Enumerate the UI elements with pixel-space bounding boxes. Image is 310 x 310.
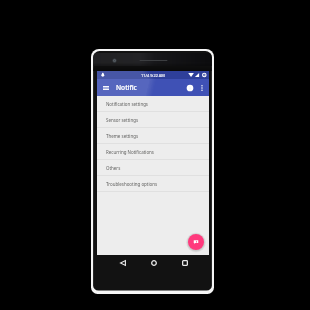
button[interactable]: New message xyxy=(188,234,204,250)
staticText: 11/4 9:22 AM xyxy=(141,73,165,78)
staticText: Sensor settings xyxy=(106,117,139,123)
staticText: Notific xyxy=(116,83,137,92)
staticText: Recurring Notifications xyxy=(106,149,154,155)
button[interactable]: Notification settings xyxy=(97,96,209,112)
staticText: Notification settings xyxy=(106,101,148,107)
button[interactable]: Troubleshooting options xyxy=(97,176,209,192)
staticText: Theme settings xyxy=(106,133,139,139)
button[interactable]: Recurring Notifications xyxy=(97,144,209,160)
button[interactable]: Info xyxy=(183,79,196,96)
button[interactable]: More options xyxy=(196,79,207,96)
button[interactable]: Back xyxy=(116,256,129,269)
button[interactable]: Theme settings xyxy=(97,128,209,144)
button[interactable]: Home xyxy=(147,256,160,269)
button[interactable]: Open navigation drawer xyxy=(97,79,115,96)
staticText: Troubleshooting options xyxy=(106,181,158,187)
button[interactable]: Recents xyxy=(178,256,191,269)
button[interactable]: Others xyxy=(97,160,209,176)
staticText: Others xyxy=(106,165,121,171)
button[interactable]: Sensor settings xyxy=(97,112,209,128)
